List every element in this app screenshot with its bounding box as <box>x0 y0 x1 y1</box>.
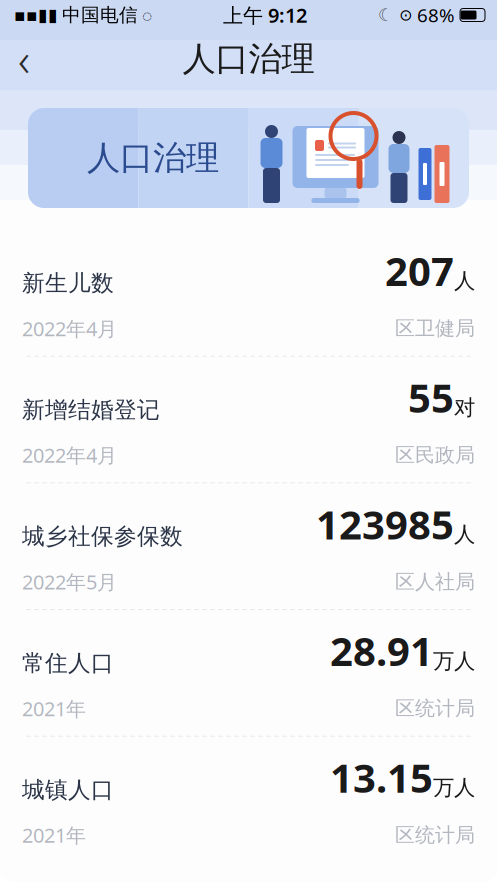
staticText: 13.15 <box>330 751 433 804</box>
staticText: ‹ <box>18 29 30 89</box>
staticText: 55 <box>408 371 454 424</box>
staticText: 城乡社保参保数 <box>22 523 183 550</box>
staticText: 新增结婚登记 <box>22 396 160 424</box>
staticText: 人口治理 <box>182 38 314 79</box>
staticText: 新生儿数 <box>22 269 114 297</box>
staticText: 万人 <box>433 648 475 674</box>
staticText: 人口治理 <box>87 137 219 178</box>
staticText: 2022年4月 <box>22 442 117 468</box>
staticText: 2021年 <box>22 695 86 722</box>
staticText: 区统计局 <box>395 823 475 847</box>
button[interactable]: 城镇人口 <box>0 737 497 862</box>
button[interactable]: 常住人口 <box>0 610 497 736</box>
staticText: 68% <box>417 3 455 27</box>
button[interactable]: 返回 <box>2 37 46 81</box>
staticText: ⊙ <box>399 6 412 24</box>
staticText: 2022年4月 <box>22 315 117 342</box>
staticText: ☾ <box>378 5 394 25</box>
staticText: 中国电信 <box>62 3 138 26</box>
button[interactable]: 城乡社保参保数 <box>0 483 497 609</box>
button[interactable]: 新增结婚登记 <box>0 357 497 482</box>
staticText: 区民政局 <box>395 443 475 467</box>
button[interactable]: 新生儿数 <box>0 230 497 356</box>
staticText: 万人 <box>433 775 475 801</box>
staticText: ◌ <box>142 3 152 26</box>
staticText: 28.91 <box>330 624 433 677</box>
staticText: 区卫健局 <box>395 316 475 341</box>
staticText: 123985 <box>316 497 454 550</box>
staticText: 区统计局 <box>395 696 475 721</box>
staticText: 区人社局 <box>395 569 475 594</box>
staticText: 城镇人口 <box>22 776 114 804</box>
staticText: 人 <box>454 521 475 547</box>
staticText: 人 <box>454 268 475 294</box>
staticText: 207 <box>385 244 454 297</box>
staticText: 2022年5月 <box>22 568 117 595</box>
staticText: 常住人口 <box>22 649 114 677</box>
staticText: 上午 9:12 <box>223 2 307 28</box>
staticText: 2021年 <box>22 822 86 848</box>
staticText: ▪▪▮▮ <box>14 5 58 25</box>
staticText: 对 <box>454 395 475 421</box>
